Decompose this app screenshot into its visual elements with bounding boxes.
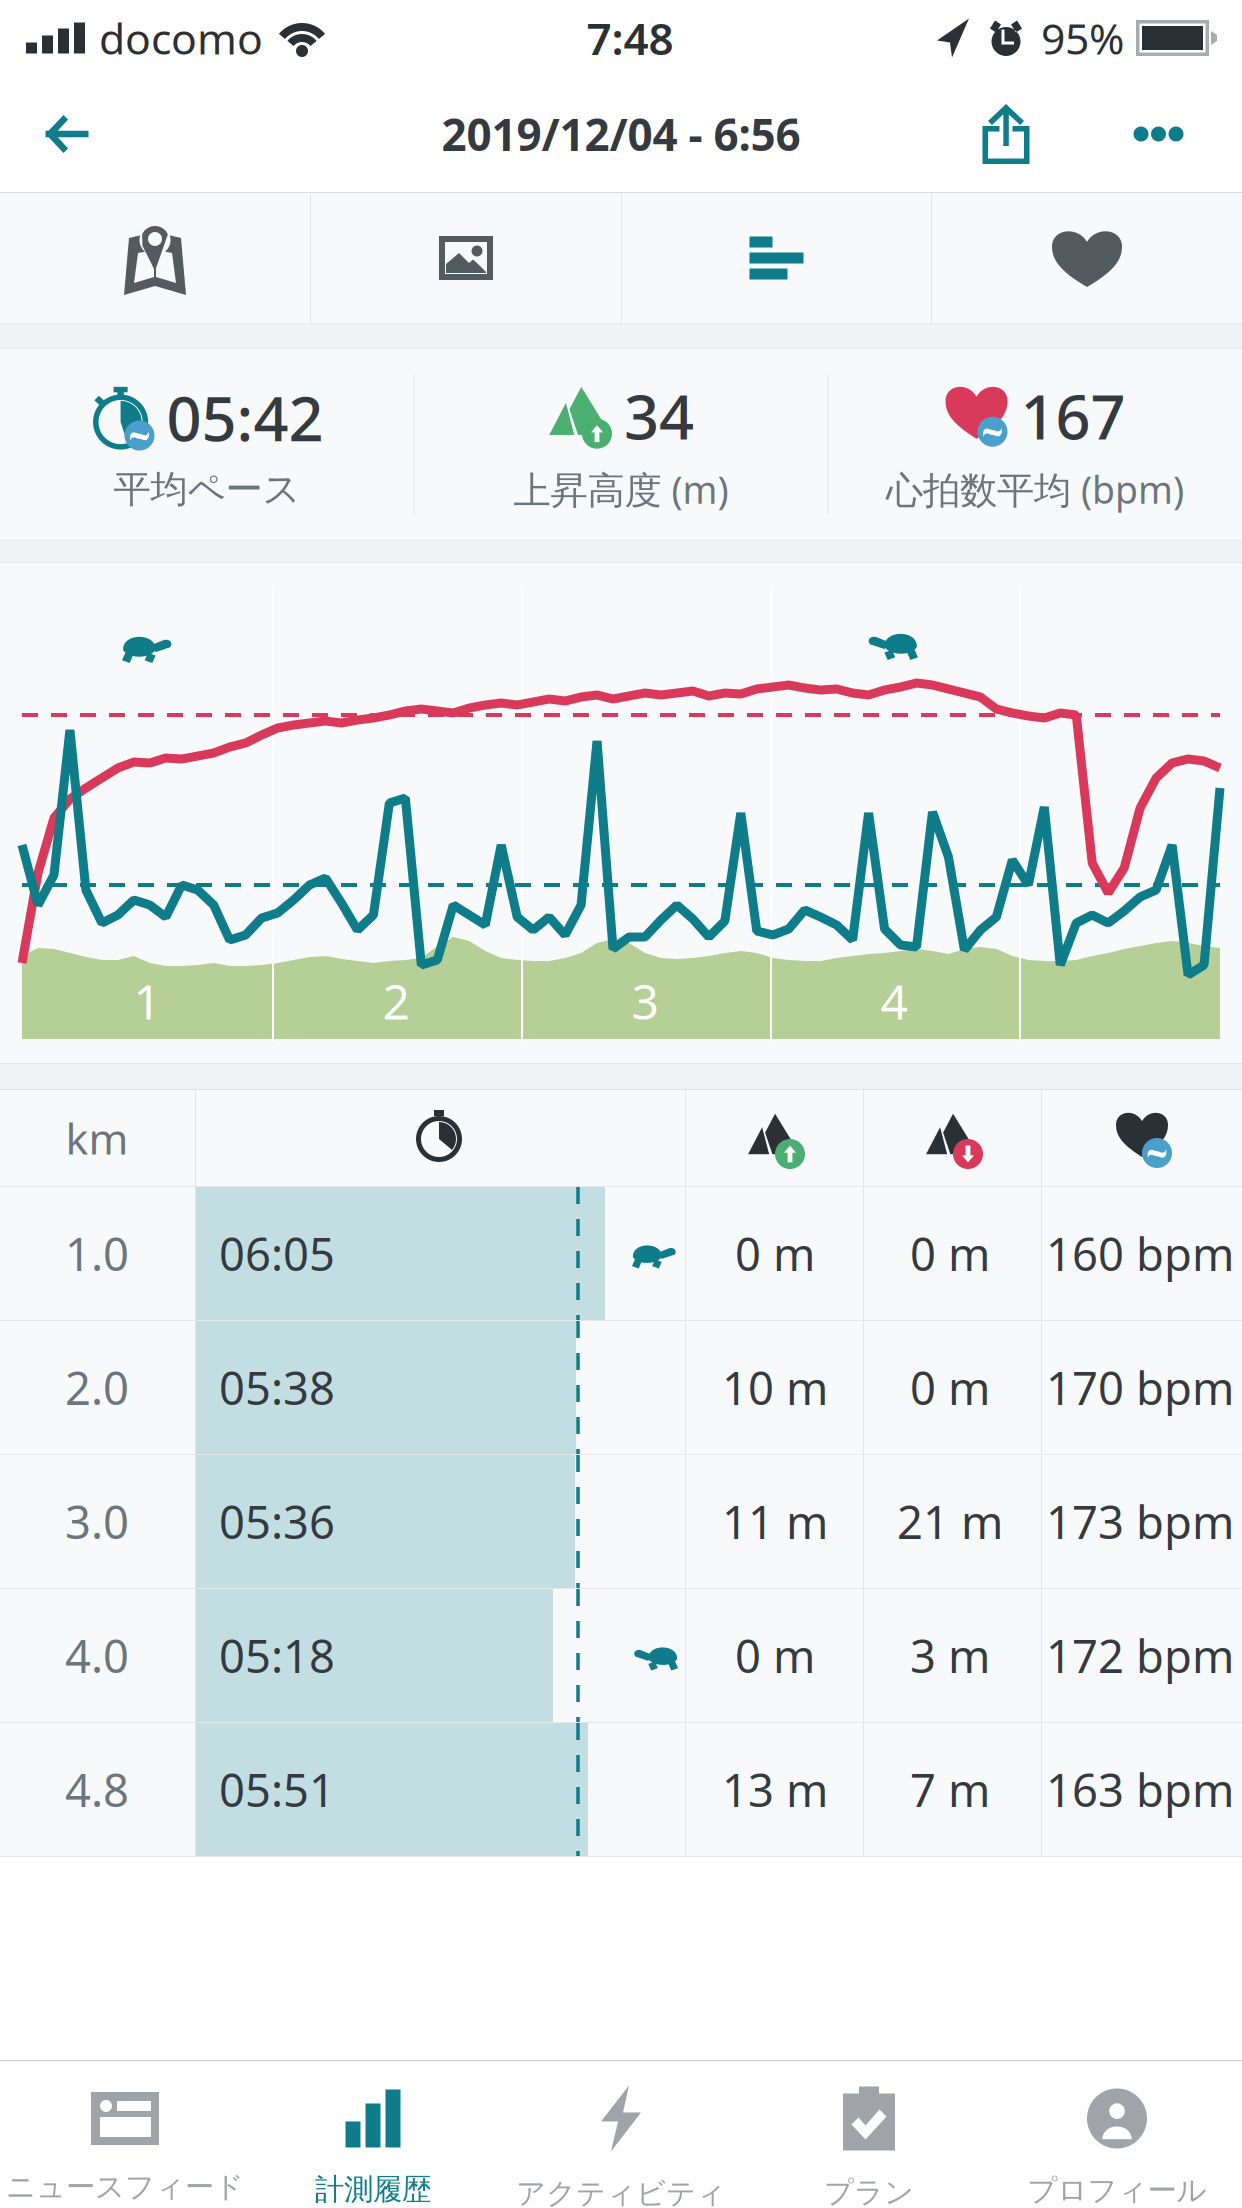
staticText: 1: [133, 969, 160, 1033]
staticText: km: [65, 1110, 128, 1166]
button[interactable]: Heart rate: [932, 193, 1242, 323]
button[interactable]: Share: [937, 76, 1075, 192]
button[interactable]: More options: [1075, 76, 1242, 192]
staticText: 173 bpm: [1046, 1491, 1234, 1552]
staticText: 05:42: [166, 377, 323, 458]
staticText: 06:05: [219, 1223, 335, 1284]
staticText: 計測履歴: [315, 2171, 431, 2207]
staticText: ニュースフィード: [6, 2169, 244, 2205]
staticText: 3 m: [910, 1625, 990, 1686]
staticText: 05:36: [219, 1491, 335, 1552]
staticText: 4: [880, 969, 907, 1033]
staticText: 2: [382, 969, 409, 1033]
staticText: 7:48: [586, 9, 673, 67]
staticText: 0 m: [910, 1357, 990, 1418]
staticText: 10 m: [722, 1357, 828, 1418]
staticText: 2.0: [65, 1357, 129, 1418]
button[interactable]: Map: [0, 193, 310, 323]
staticText: 0 m: [735, 1223, 815, 1284]
staticText: 3.0: [65, 1491, 129, 1552]
staticText: 05:18: [219, 1625, 335, 1686]
staticText: 167: [1020, 375, 1125, 456]
button[interactable]: ニュースフィード: [1, 2047, 249, 2208]
staticText: 0 m: [910, 1223, 990, 1284]
staticText: 95%: [1041, 10, 1124, 66]
staticText: 4.0: [65, 1625, 129, 1686]
button[interactable]: 計測履歴: [249, 2047, 497, 2208]
staticText: 上昇高度 (m): [513, 464, 728, 514]
button[interactable]: Back: [0, 76, 133, 192]
button[interactable]: Photos: [311, 193, 621, 323]
staticText: プラン: [824, 2174, 914, 2208]
button[interactable]: プロフィール: [993, 2047, 1241, 2208]
button[interactable]: Splits: [622, 193, 931, 323]
staticText: docomo: [99, 10, 263, 66]
button[interactable]: プラン: [745, 2047, 993, 2208]
staticText: 平均ペース: [113, 466, 300, 512]
staticText: 163 bpm: [1046, 1759, 1234, 1820]
staticText: 05:51: [219, 1759, 335, 1820]
staticText: プロフィール: [1027, 2172, 1206, 2208]
staticText: 心拍数平均 (bpm): [886, 464, 1184, 514]
staticText: 21 m: [897, 1491, 1003, 1552]
staticText: 0 m: [735, 1625, 815, 1686]
staticText: 172 bpm: [1046, 1625, 1234, 1686]
staticText: 05:38: [219, 1357, 335, 1418]
staticText: 4.8: [65, 1759, 129, 1820]
staticText: 7 m: [910, 1759, 990, 1820]
staticText: 2019/12/04 - 6:56: [441, 105, 800, 163]
staticText: 13 m: [722, 1759, 828, 1820]
staticText: 3: [631, 969, 658, 1033]
staticText: 11 m: [722, 1491, 828, 1552]
staticText: アクティビティ: [516, 2175, 726, 2208]
staticText: 160 bpm: [1046, 1223, 1234, 1284]
button[interactable]: アクティビティ: [497, 2047, 745, 2208]
staticText: 170 bpm: [1046, 1357, 1234, 1418]
staticText: 34: [624, 375, 694, 456]
staticText: 1.0: [65, 1223, 129, 1284]
